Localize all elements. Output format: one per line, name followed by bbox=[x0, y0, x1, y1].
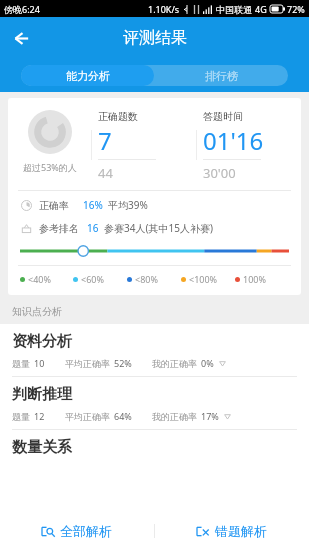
staticText: 平均39% bbox=[108, 198, 148, 212]
staticText: <80% bbox=[135, 273, 158, 285]
staticText: 能力分析 bbox=[66, 69, 110, 83]
staticText: <40% bbox=[28, 273, 51, 285]
staticText: 正确率 bbox=[39, 199, 69, 212]
staticText: 10 bbox=[34, 357, 45, 369]
staticText: 参赛34人(其中15人补赛) bbox=[104, 221, 213, 235]
staticText: 0% bbox=[201, 357, 214, 369]
button[interactable]: 能力分析 bbox=[21, 65, 154, 86]
staticText: 题量 bbox=[12, 411, 30, 422]
staticText: 答题时间 bbox=[203, 110, 243, 123]
staticText: <60% bbox=[81, 273, 104, 285]
staticText: 17% bbox=[201, 410, 219, 422]
button[interactable]: 错题解析 bbox=[155, 512, 309, 550]
staticText: 知识点分析 bbox=[12, 305, 62, 318]
staticText: 资料分析 bbox=[12, 332, 72, 351]
staticText: 7 bbox=[98, 124, 112, 157]
staticText: 4G bbox=[255, 3, 267, 15]
staticText: 52% bbox=[114, 357, 132, 369]
staticText: 12 bbox=[34, 410, 45, 422]
staticText: 参考排名 bbox=[39, 222, 79, 235]
button[interactable]: 全部解析 bbox=[0, 512, 154, 550]
staticText: 平均正确率 bbox=[65, 411, 110, 422]
staticText: 评测结果 bbox=[123, 28, 187, 48]
staticText: 正确题数 bbox=[98, 110, 138, 123]
staticText: 16% bbox=[83, 198, 103, 212]
staticText: 排行榜 bbox=[205, 69, 238, 83]
staticText: 100% bbox=[243, 273, 266, 285]
staticText: 44 bbox=[98, 164, 113, 182]
staticText: 超过53%的人 bbox=[23, 161, 77, 173]
staticText: 数量关系 bbox=[12, 438, 72, 457]
staticText: 判断推理 bbox=[12, 385, 72, 404]
staticText: <100% bbox=[189, 273, 218, 285]
staticText: 16 bbox=[87, 221, 99, 235]
button[interactable]: 判断推理 bbox=[0, 377, 309, 429]
staticText: 全部解析 bbox=[60, 523, 112, 539]
staticText: 题量 bbox=[12, 358, 30, 369]
staticText: 中国联通 bbox=[216, 4, 252, 15]
staticText: 1.10K/s bbox=[148, 3, 180, 15]
staticText: 我的正确率 bbox=[152, 411, 197, 422]
button[interactable]: Back bbox=[0, 18, 40, 58]
staticText: 我的正确率 bbox=[152, 358, 197, 369]
staticText: 64% bbox=[114, 410, 132, 422]
staticText: 错题解析 bbox=[215, 523, 267, 539]
staticText: 30'00 bbox=[203, 164, 236, 182]
staticText: 72% bbox=[287, 3, 305, 15]
staticText: 平均正确率 bbox=[65, 358, 110, 369]
staticText: 傍晚6:24 bbox=[4, 3, 40, 15]
staticText: 01'16 bbox=[203, 124, 264, 157]
button[interactable]: 资料分析 bbox=[0, 324, 309, 376]
button[interactable]: 排行榜 bbox=[154, 65, 288, 86]
